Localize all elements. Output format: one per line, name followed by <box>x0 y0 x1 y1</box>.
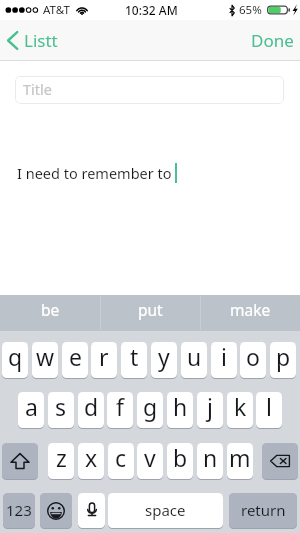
button[interactable]: b <box>167 443 193 479</box>
button[interactable]: x <box>78 443 104 479</box>
staticText: i <box>221 342 227 372</box>
button[interactable]: Listt <box>0 23 68 58</box>
staticText: be <box>41 299 60 320</box>
button[interactable]: p <box>270 342 296 378</box>
staticText: 10:32 AM <box>125 2 178 18</box>
button[interactable]: u <box>181 342 207 378</box>
button[interactable]: k <box>227 392 253 428</box>
button[interactable]: put <box>100 295 200 331</box>
staticText: h <box>173 392 188 422</box>
staticText: u <box>187 342 202 372</box>
staticText: l <box>266 392 272 422</box>
staticText: o <box>246 342 260 372</box>
button[interactable]: v <box>137 443 163 479</box>
staticText: Title <box>23 79 52 99</box>
button[interactable]: Backspace <box>262 443 298 479</box>
button[interactable]: h <box>167 392 193 428</box>
button[interactable]: space <box>108 493 223 528</box>
button[interactable]: Shift <box>2 443 38 479</box>
button[interactable]: be <box>0 295 100 331</box>
staticText: put <box>138 299 163 320</box>
staticText: s <box>55 392 67 422</box>
staticText: f <box>116 392 124 422</box>
button[interactable]: t <box>121 342 147 378</box>
staticText: make <box>230 299 271 320</box>
staticText: x <box>85 443 98 473</box>
staticText: space <box>145 500 186 520</box>
button[interactable]: d <box>78 392 104 428</box>
staticText: AT&T <box>43 2 70 18</box>
button[interactable]: w <box>32 342 58 378</box>
staticText: a <box>25 392 38 422</box>
staticText: j <box>207 392 213 422</box>
button[interactable]: make <box>200 295 300 331</box>
staticText: Listt <box>24 29 58 52</box>
button[interactable]: g <box>137 392 163 428</box>
staticText: d <box>84 392 99 422</box>
button[interactable]: i <box>211 342 237 378</box>
staticText: g <box>143 392 158 422</box>
staticText: v <box>144 443 156 473</box>
staticText: y <box>158 342 170 372</box>
button[interactable]: Emoji <box>40 493 72 528</box>
button[interactable]: m <box>227 443 253 479</box>
button[interactable]: a <box>18 392 44 428</box>
button[interactable]: j <box>197 392 223 428</box>
staticText: n <box>203 443 218 473</box>
staticText: q <box>8 342 23 372</box>
staticText: 123 <box>6 500 32 520</box>
button[interactable]: n <box>197 443 223 479</box>
button[interactable]: y <box>151 342 177 378</box>
button[interactable]: o <box>240 342 266 378</box>
staticText: 65% <box>239 2 262 18</box>
staticText: return <box>241 500 286 520</box>
button[interactable]: q <box>2 342 28 378</box>
button[interactable]: return <box>229 493 297 528</box>
button[interactable]: r <box>91 342 117 378</box>
button[interactable]: l <box>256 392 282 428</box>
staticText: I need to remember to <box>17 163 172 183</box>
staticText: p <box>276 342 291 372</box>
staticText: m <box>229 443 251 473</box>
staticText: c <box>115 443 127 473</box>
button[interactable]: z <box>48 443 74 479</box>
button[interactable]: Dictate <box>78 493 105 528</box>
button[interactable]: f <box>107 392 133 428</box>
button[interactable]: e <box>62 342 88 378</box>
staticText: r <box>99 342 109 372</box>
staticText: t <box>130 342 139 372</box>
staticText: k <box>234 392 247 422</box>
button[interactable]: 123 <box>3 493 35 528</box>
button[interactable]: Done <box>239 23 300 58</box>
button[interactable]: c <box>108 443 134 479</box>
staticText: z <box>56 443 67 473</box>
staticText: Done <box>251 29 294 52</box>
staticText: w <box>36 342 55 372</box>
staticText: b <box>173 443 188 473</box>
button[interactable]: Title <box>15 76 284 104</box>
staticText: e <box>69 342 82 372</box>
button[interactable]: s <box>48 392 74 428</box>
